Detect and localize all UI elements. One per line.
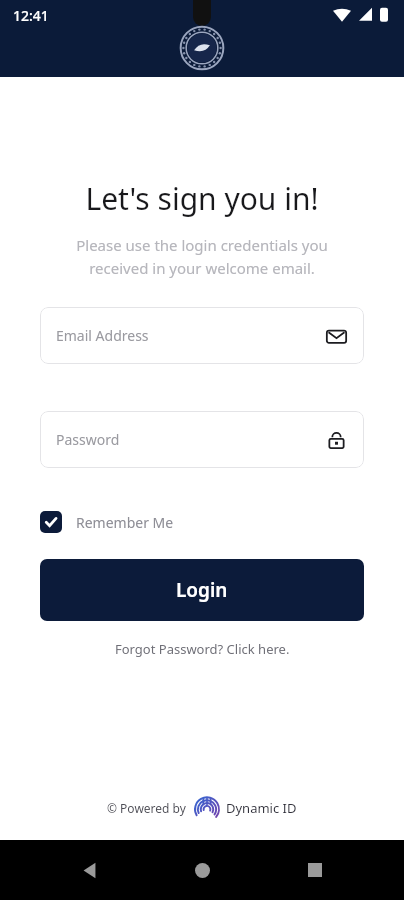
staticText: Password xyxy=(56,430,324,449)
staticText: 12:41 xyxy=(13,6,49,25)
button[interactable]: Forgot Password? Click here. xyxy=(0,640,404,658)
other: App logo xyxy=(180,26,224,70)
staticText: Let's sign you in! xyxy=(0,178,404,219)
other: Email xyxy=(324,324,348,348)
staticText: Forgot Password? Click here. xyxy=(115,640,290,658)
button[interactable]: Login xyxy=(40,559,364,621)
button[interactable]: Password xyxy=(40,411,364,468)
button[interactable]: Remember Me xyxy=(40,511,174,533)
staticText: Please use the login credentials you rec… xyxy=(0,235,404,278)
button[interactable]: Back xyxy=(65,846,113,894)
staticText: © Powered by xyxy=(107,800,186,816)
staticText: Remember Me xyxy=(76,513,174,532)
button[interactable]: Email Address xyxy=(40,307,364,364)
staticText: Dynamic ID xyxy=(226,799,297,817)
button[interactable]: Home xyxy=(178,846,226,894)
staticText: Email Address xyxy=(56,326,324,345)
button[interactable]: Recent apps xyxy=(291,846,339,894)
staticText: Login xyxy=(176,577,228,603)
other: Password xyxy=(324,428,348,452)
